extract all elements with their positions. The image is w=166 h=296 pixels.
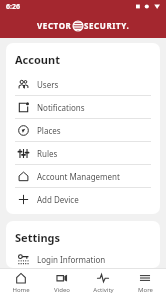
staticText: Add Device	[37, 194, 79, 205]
button[interactable]: Login Information	[15, 251, 151, 268]
button[interactable]: Add Device	[15, 188, 151, 210]
staticText: Account Management	[37, 171, 120, 182]
button[interactable]: Home	[0, 269, 41, 296]
staticText: Activity	[93, 286, 114, 294]
staticText: Rules	[37, 148, 58, 159]
staticText: Video	[54, 286, 70, 294]
staticText: Notifications	[37, 102, 85, 113]
other: Home	[15, 272, 27, 284]
staticText: Places	[37, 125, 61, 136]
button[interactable]: Notifications	[15, 96, 151, 119]
staticText: SECURITY.	[84, 20, 130, 31]
staticText: Settings	[15, 230, 61, 245]
other: More	[139, 272, 151, 284]
staticText: VECTOR	[37, 20, 72, 31]
button[interactable]: Video	[41, 269, 82, 296]
staticText: Users	[37, 79, 59, 90]
button[interactable]: Users	[15, 73, 151, 96]
button[interactable]: Account Management	[15, 165, 151, 188]
staticText: 6:26	[6, 2, 20, 12]
other: Activity	[97, 272, 109, 284]
staticText: Login Information	[37, 254, 106, 265]
other: Video	[56, 272, 68, 284]
button[interactable]: Places	[15, 119, 151, 142]
button[interactable]: More	[124, 269, 166, 296]
button[interactable]: Rules	[15, 142, 151, 165]
staticText: Home	[12, 286, 30, 294]
staticText: More	[138, 286, 153, 294]
staticText: Account	[15, 52, 60, 67]
button[interactable]: Activity	[82, 269, 124, 296]
